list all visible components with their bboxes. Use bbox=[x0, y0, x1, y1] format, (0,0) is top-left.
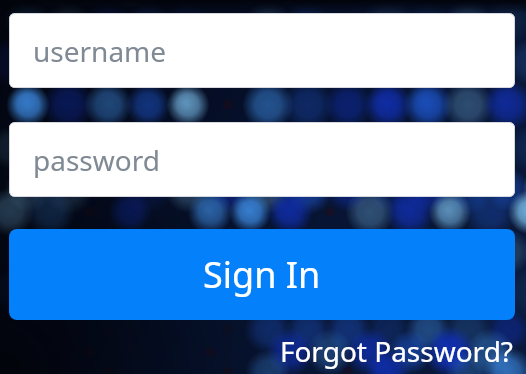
staticText: username bbox=[33, 32, 167, 70]
button[interactable]: Sign In bbox=[9, 229, 515, 320]
staticText: password bbox=[33, 141, 160, 179]
button[interactable]: password bbox=[9, 122, 515, 197]
button[interactable]: username bbox=[9, 13, 515, 88]
button[interactable]: Forgot Password? bbox=[277, 330, 515, 372]
staticText: Sign In bbox=[203, 250, 321, 299]
